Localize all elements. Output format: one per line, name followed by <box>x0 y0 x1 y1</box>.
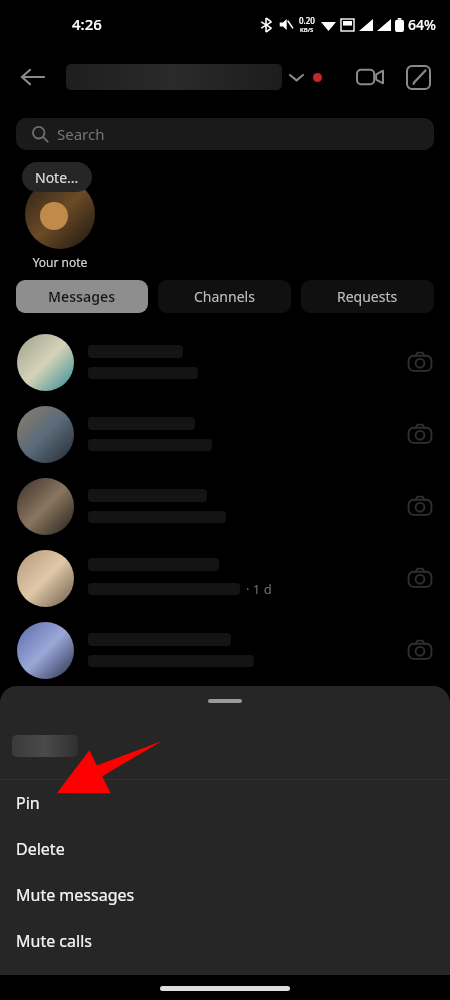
button[interactable] <box>66 64 322 90</box>
button[interactable]: Note... <box>22 162 92 192</box>
button[interactable]: Messages <box>16 280 148 313</box>
button[interactable]: Channels <box>158 280 291 313</box>
button[interactable]: · 1 d <box>0 542 450 614</box>
staticText: 0.20 <box>299 15 315 26</box>
staticText: Search <box>57 124 105 144</box>
button[interactable]: Pin <box>0 780 450 826</box>
button[interactable]: Mute calls <box>0 918 450 964</box>
button[interactable]: Camera <box>395 481 445 531</box>
staticText: Pin <box>16 792 40 814</box>
button[interactable]: Camera <box>0 614 450 686</box>
button[interactable]: Camera <box>0 326 450 398</box>
button[interactable]: Camera <box>395 409 445 459</box>
button[interactable]: Camera <box>395 337 445 387</box>
staticText: Delete <box>16 838 65 860</box>
staticText: · 1 d <box>246 580 272 598</box>
button[interactable]: Camera <box>0 470 450 542</box>
button[interactable]: Delete <box>0 826 450 872</box>
button[interactable]: New message <box>394 53 442 101</box>
button[interactable]: Mute messages <box>0 872 450 918</box>
staticText: Requests <box>337 287 398 306</box>
staticText: Messages <box>48 287 116 306</box>
staticText: 4:26 <box>72 14 102 34</box>
staticText: 64% <box>408 15 436 34</box>
button[interactable]: Camera <box>395 553 445 603</box>
button[interactable]: Search <box>16 118 434 150</box>
button[interactable]: Video call <box>346 53 394 101</box>
button[interactable]: Camera <box>0 398 450 470</box>
staticText: Mute calls <box>16 930 92 952</box>
staticText: Your note <box>26 254 94 270</box>
staticText: Mute messages <box>16 884 135 906</box>
staticText: Channels <box>194 287 255 306</box>
button[interactable]: Back <box>8 53 56 101</box>
staticText: Note... <box>35 168 79 187</box>
button[interactable]: Requests <box>301 280 434 313</box>
button[interactable] <box>25 179 95 249</box>
button[interactable]: Camera <box>395 625 445 675</box>
staticText: KB/S <box>300 26 314 34</box>
